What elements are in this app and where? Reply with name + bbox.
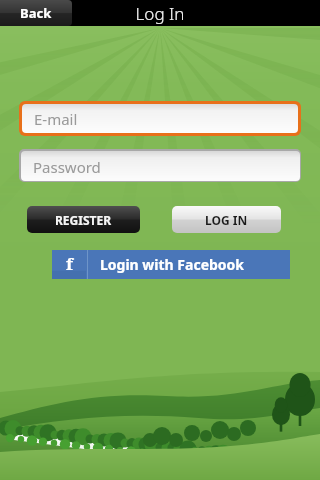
staticText: Log In xyxy=(0,2,320,28)
other: Facebook xyxy=(52,250,86,279)
button[interactable]: Facebook xyxy=(52,250,290,279)
staticText: Password xyxy=(33,157,101,177)
button[interactable]: REGISTER xyxy=(27,206,140,233)
staticText: E-mail xyxy=(34,109,78,129)
staticText: Back xyxy=(20,4,52,22)
button[interactable]: E-mail xyxy=(19,101,301,136)
staticText: LOG IN xyxy=(205,212,248,228)
staticText: Login with Facebook xyxy=(100,255,245,274)
button[interactable]: LOG IN xyxy=(172,206,281,233)
button[interactable]: Password xyxy=(19,149,301,182)
staticText: f xyxy=(66,252,73,275)
staticText: REGISTER xyxy=(55,212,112,228)
button[interactable]: Back xyxy=(0,0,72,26)
